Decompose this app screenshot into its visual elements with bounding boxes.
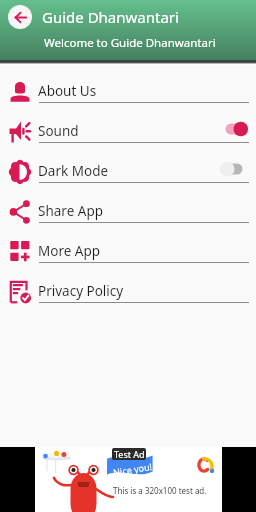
button[interactable]: Privacy Policy	[0, 263, 256, 303]
staticText: Sound	[38, 122, 79, 140]
staticText: Dark Mode	[38, 162, 109, 180]
staticText: Privacy Policy	[38, 282, 124, 300]
staticText: More App	[38, 242, 101, 260]
button[interactable]: Sound on	[219, 121, 243, 137]
button[interactable]: Back	[8, 5, 32, 29]
staticText: Share App	[38, 202, 103, 220]
staticText: Guide Dhanwantari	[42, 7, 179, 27]
button[interactable]: Sound	[0, 103, 256, 143]
staticText: About Us	[38, 82, 97, 100]
button[interactable]: About Us	[0, 63, 256, 103]
staticText: This is a 320x100 test ad.	[113, 485, 207, 496]
staticText: Nice you!	[112, 460, 153, 478]
button[interactable]: Dark Mode	[0, 143, 256, 183]
staticText: Test Ad	[114, 448, 145, 460]
button[interactable]: Share App	[0, 183, 256, 223]
button[interactable]: More App	[0, 223, 256, 263]
button[interactable]: Dark mode off	[219, 161, 243, 177]
staticText: Welcome to Guide Dhanwantari	[44, 35, 216, 51]
